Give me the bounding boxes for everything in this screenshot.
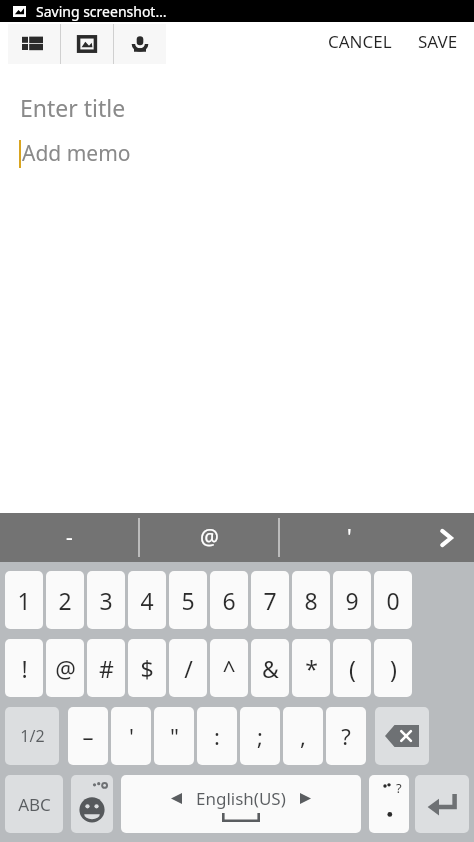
button[interactable]: Backspace xyxy=(375,707,429,765)
button[interactable]: 6 xyxy=(210,571,248,629)
button[interactable]: 1 xyxy=(5,571,43,629)
button[interactable]: , xyxy=(283,707,323,765)
staticText: ? xyxy=(341,721,351,751)
staticText: : xyxy=(214,721,220,751)
button[interactable]: ; xyxy=(240,707,280,765)
button[interactable]: * xyxy=(292,639,330,697)
button[interactable]: Insert image xyxy=(61,24,113,64)
staticText: * xyxy=(305,653,318,684)
button[interactable]: ^ xyxy=(210,639,248,697)
staticText: SAVE xyxy=(418,30,458,53)
button[interactable]: More suggestions xyxy=(418,513,474,562)
button[interactable]: SAVE xyxy=(410,30,466,53)
button[interactable]: @ xyxy=(46,639,84,697)
button[interactable]: Bullet list xyxy=(8,24,60,64)
staticText: , xyxy=(300,721,306,751)
staticText: Add memo xyxy=(22,139,131,168)
button[interactable]: " xyxy=(154,707,194,765)
staticText: ? xyxy=(396,779,402,797)
button[interactable]: ! xyxy=(5,639,43,697)
button[interactable]: ABC xyxy=(5,775,63,833)
button[interactable]: & xyxy=(251,639,289,697)
staticText: 1 xyxy=(17,585,31,616)
button[interactable]: ) xyxy=(374,639,412,697)
staticText: English(US) xyxy=(196,787,286,810)
button[interactable]: 1/2 xyxy=(5,707,59,765)
button[interactable]: : xyxy=(197,707,237,765)
staticText: ! xyxy=(21,653,28,684)
button[interactable]: 2 xyxy=(46,571,84,629)
staticText: 1/2 xyxy=(20,725,45,747)
staticText: Enter title xyxy=(20,92,126,123)
button[interactable]: - xyxy=(0,513,138,562)
staticText: ( xyxy=(349,653,356,684)
button[interactable]: $ xyxy=(128,639,166,697)
button[interactable]: @ xyxy=(140,513,278,562)
staticText: Saving screenshot… xyxy=(36,2,167,21)
staticText: " xyxy=(170,721,179,751)
button[interactable]: ' xyxy=(111,707,151,765)
button[interactable]: – xyxy=(68,707,108,765)
staticText: ' xyxy=(129,721,134,751)
button[interactable]: Emoji and settings xyxy=(71,775,113,833)
staticText: @ xyxy=(55,653,76,684)
button[interactable]: 9 xyxy=(333,571,371,629)
staticText: @ xyxy=(200,523,219,552)
staticText: & xyxy=(262,653,279,684)
button[interactable]: Enter xyxy=(415,775,469,833)
staticText: – xyxy=(82,721,94,751)
button[interactable]: # xyxy=(87,639,125,697)
button[interactable]: Space, English(US) xyxy=(121,775,361,833)
staticText: 7 xyxy=(263,585,277,616)
staticText: # xyxy=(99,653,114,684)
staticText: 2 xyxy=(58,585,72,616)
button[interactable]: ( xyxy=(333,639,371,697)
staticText: ABC xyxy=(18,793,51,816)
button[interactable]: CANCEL xyxy=(320,30,400,53)
staticText: ) xyxy=(390,653,397,684)
button[interactable]: ? xyxy=(326,707,366,765)
staticText: 8 xyxy=(304,585,318,616)
staticText: 5 xyxy=(181,585,195,616)
button[interactable]: / xyxy=(169,639,207,697)
staticText: ; xyxy=(257,721,263,751)
staticText: ' xyxy=(347,523,352,552)
staticText: 4 xyxy=(140,585,154,616)
staticText: - xyxy=(66,523,73,552)
button[interactable]: Voice recording xyxy=(114,24,166,64)
button[interactable]: 4 xyxy=(128,571,166,629)
staticText: ^ xyxy=(222,653,236,684)
button[interactable]: 5 xyxy=(169,571,207,629)
button[interactable]: 0 xyxy=(374,571,412,629)
staticText: CANCEL xyxy=(328,30,392,53)
staticText: 6 xyxy=(222,585,236,616)
staticText: 3 xyxy=(99,585,113,616)
staticText: 0 xyxy=(386,585,400,616)
staticText: / xyxy=(184,653,193,684)
button[interactable]: ' xyxy=(280,513,418,562)
staticText: $ xyxy=(140,653,154,684)
button[interactable]: 3 xyxy=(87,571,125,629)
staticText: 9 xyxy=(345,585,359,616)
button[interactable]: 7 xyxy=(251,571,289,629)
button[interactable]: ? xyxy=(369,775,409,833)
button[interactable]: 8 xyxy=(292,571,330,629)
